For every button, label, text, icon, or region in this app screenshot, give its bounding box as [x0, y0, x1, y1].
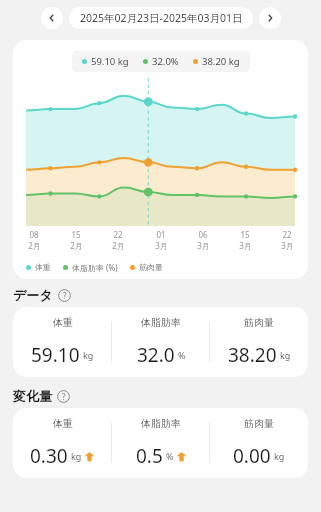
- staticText: 01: [156, 229, 166, 240]
- staticText: 3月: [155, 240, 168, 251]
- staticText: 体重: [35, 262, 51, 272]
- staticText: 59.10 kg: [91, 55, 129, 68]
- staticText: 08: [29, 229, 39, 240]
- button[interactable]: 筋肉量: [210, 307, 308, 377]
- button[interactable]: 体重: [13, 307, 112, 377]
- staticText: 体脂肪率: [141, 417, 181, 430]
- staticText: 32.0: [137, 342, 175, 368]
- staticText: 筋肉量: [139, 262, 163, 272]
- button[interactable]: 体脂肪率: [112, 408, 210, 478]
- staticText: 変化量: [13, 388, 52, 404]
- staticText: %: [178, 349, 186, 361]
- staticText: 筋肉量: [244, 316, 274, 329]
- staticText: 0.00: [233, 443, 271, 469]
- staticText: 59.10: [31, 342, 80, 368]
- staticText: kg: [274, 450, 285, 462]
- staticText: 0.30: [30, 443, 68, 469]
- button[interactable]: Next week: [259, 7, 281, 29]
- staticText: 22: [282, 229, 292, 240]
- staticText: 体重: [53, 316, 73, 329]
- staticText: 0.5: [136, 443, 163, 469]
- staticText: 3月: [197, 240, 210, 251]
- staticText: 筋肉量: [244, 417, 274, 430]
- staticText: 体脂肪率 (%): [72, 262, 118, 273]
- staticText: 体重: [53, 417, 73, 430]
- staticText: %: [166, 450, 174, 462]
- staticText: 3月: [239, 240, 252, 251]
- staticText: 体脂肪率: [141, 316, 181, 329]
- staticText: 38.20: [228, 342, 277, 368]
- staticText: 2月: [70, 240, 83, 251]
- staticText: 32.0%: [152, 55, 179, 68]
- button[interactable]: 体重: [13, 408, 112, 478]
- staticText: データ: [13, 287, 53, 303]
- staticText: 2月: [28, 240, 41, 251]
- staticText: kg: [83, 349, 94, 361]
- staticText: 3月: [281, 240, 294, 251]
- staticText: 15: [71, 229, 81, 240]
- staticText: 15: [240, 229, 250, 240]
- staticText: kg: [71, 450, 82, 462]
- staticText: ?: [63, 290, 67, 301]
- staticText: 2月: [112, 240, 125, 251]
- button[interactable]: 2025年02月23日-2025年03月01日: [69, 7, 253, 29]
- staticText: 22: [113, 229, 123, 240]
- button[interactable]: 体脂肪率: [112, 307, 210, 377]
- staticText: kg: [280, 349, 291, 361]
- button[interactable]: Previous week: [41, 7, 63, 29]
- staticText: 06: [198, 229, 208, 240]
- button[interactable]: Help: [58, 289, 71, 302]
- button[interactable]: 筋肉量: [210, 408, 308, 478]
- staticText: 38.20 kg: [202, 55, 240, 68]
- button[interactable]: Help: [57, 390, 70, 403]
- staticText: 2025年02月23日-2025年03月01日: [80, 11, 243, 25]
- staticText: ?: [62, 391, 66, 402]
